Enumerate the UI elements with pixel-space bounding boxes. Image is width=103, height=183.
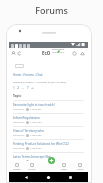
staticText: 6 days ago [30,147,42,150]
staticText: Started by: [13,108,25,111]
button[interactable]: New topic [48,157,55,164]
button[interactable]: Recents [66,173,75,182]
staticText: Home › Forums › Chat [13,73,43,77]
staticText: Finding Product Solutions for Wet CO2 [13,142,69,146]
staticText: Forums [28,168,36,171]
button[interactable]: Tab [11,44,14,48]
staticText: Forums [0,4,103,16]
button[interactable]: Tab [27,44,30,48]
staticText: Favourite light in touch with! [13,103,55,107]
button[interactable]: Notifications [80,51,85,56]
staticText: Viewing 20 topics - 1 through 20 (of 140… [13,80,67,83]
button[interactable]: Profile [72,161,88,172]
staticText: green living [52,48,65,51]
staticText: 4 days ago [30,121,42,124]
button[interactable]: Search forums [15,64,24,68]
staticText: 1 2 … 7 → [13,86,34,90]
staticText: Listings [13,168,21,171]
button[interactable]: Listings [9,161,24,172]
staticText: View of Territory who [13,129,44,133]
staticText: Topic [13,94,22,98]
staticText: EcO [42,50,51,56]
button[interactable]: Tab [23,44,26,48]
staticText: Started by: [13,147,25,150]
button[interactable]: Reload [17,51,22,56]
button[interactable]: Favourite light in touch with! [9,100,88,113]
button[interactable]: Tab [19,44,22,48]
button[interactable]: Search [72,51,77,56]
button[interactable]: Forums [24,161,40,172]
staticText: Latex Terms Intercept Not [13,155,51,159]
button[interactable]: Inbox [56,161,72,172]
button[interactable]: Tab [15,44,18,48]
button[interactable]: Finding Product Solutions for Wet CO2 [9,139,88,152]
staticText: Started by: [13,134,25,137]
staticText: fossil forum [52,51,65,54]
button[interactable]: Home [44,173,53,182]
button[interactable]: Latex Terms Intercept Not [9,152,88,165]
staticText: Infant Regulations [13,116,40,120]
button[interactable]: View of Territory who [9,126,88,139]
button[interactable]: Account [11,51,16,56]
staticText: Started by: [13,121,25,124]
staticText: Inbox [61,168,67,171]
button[interactable]: Back [22,173,31,182]
button[interactable]: Infant Regulations [9,113,88,126]
staticText: 3 days ago [30,108,42,111]
staticText: Profile [77,168,84,171]
staticText: 5 days ago [30,134,42,137]
